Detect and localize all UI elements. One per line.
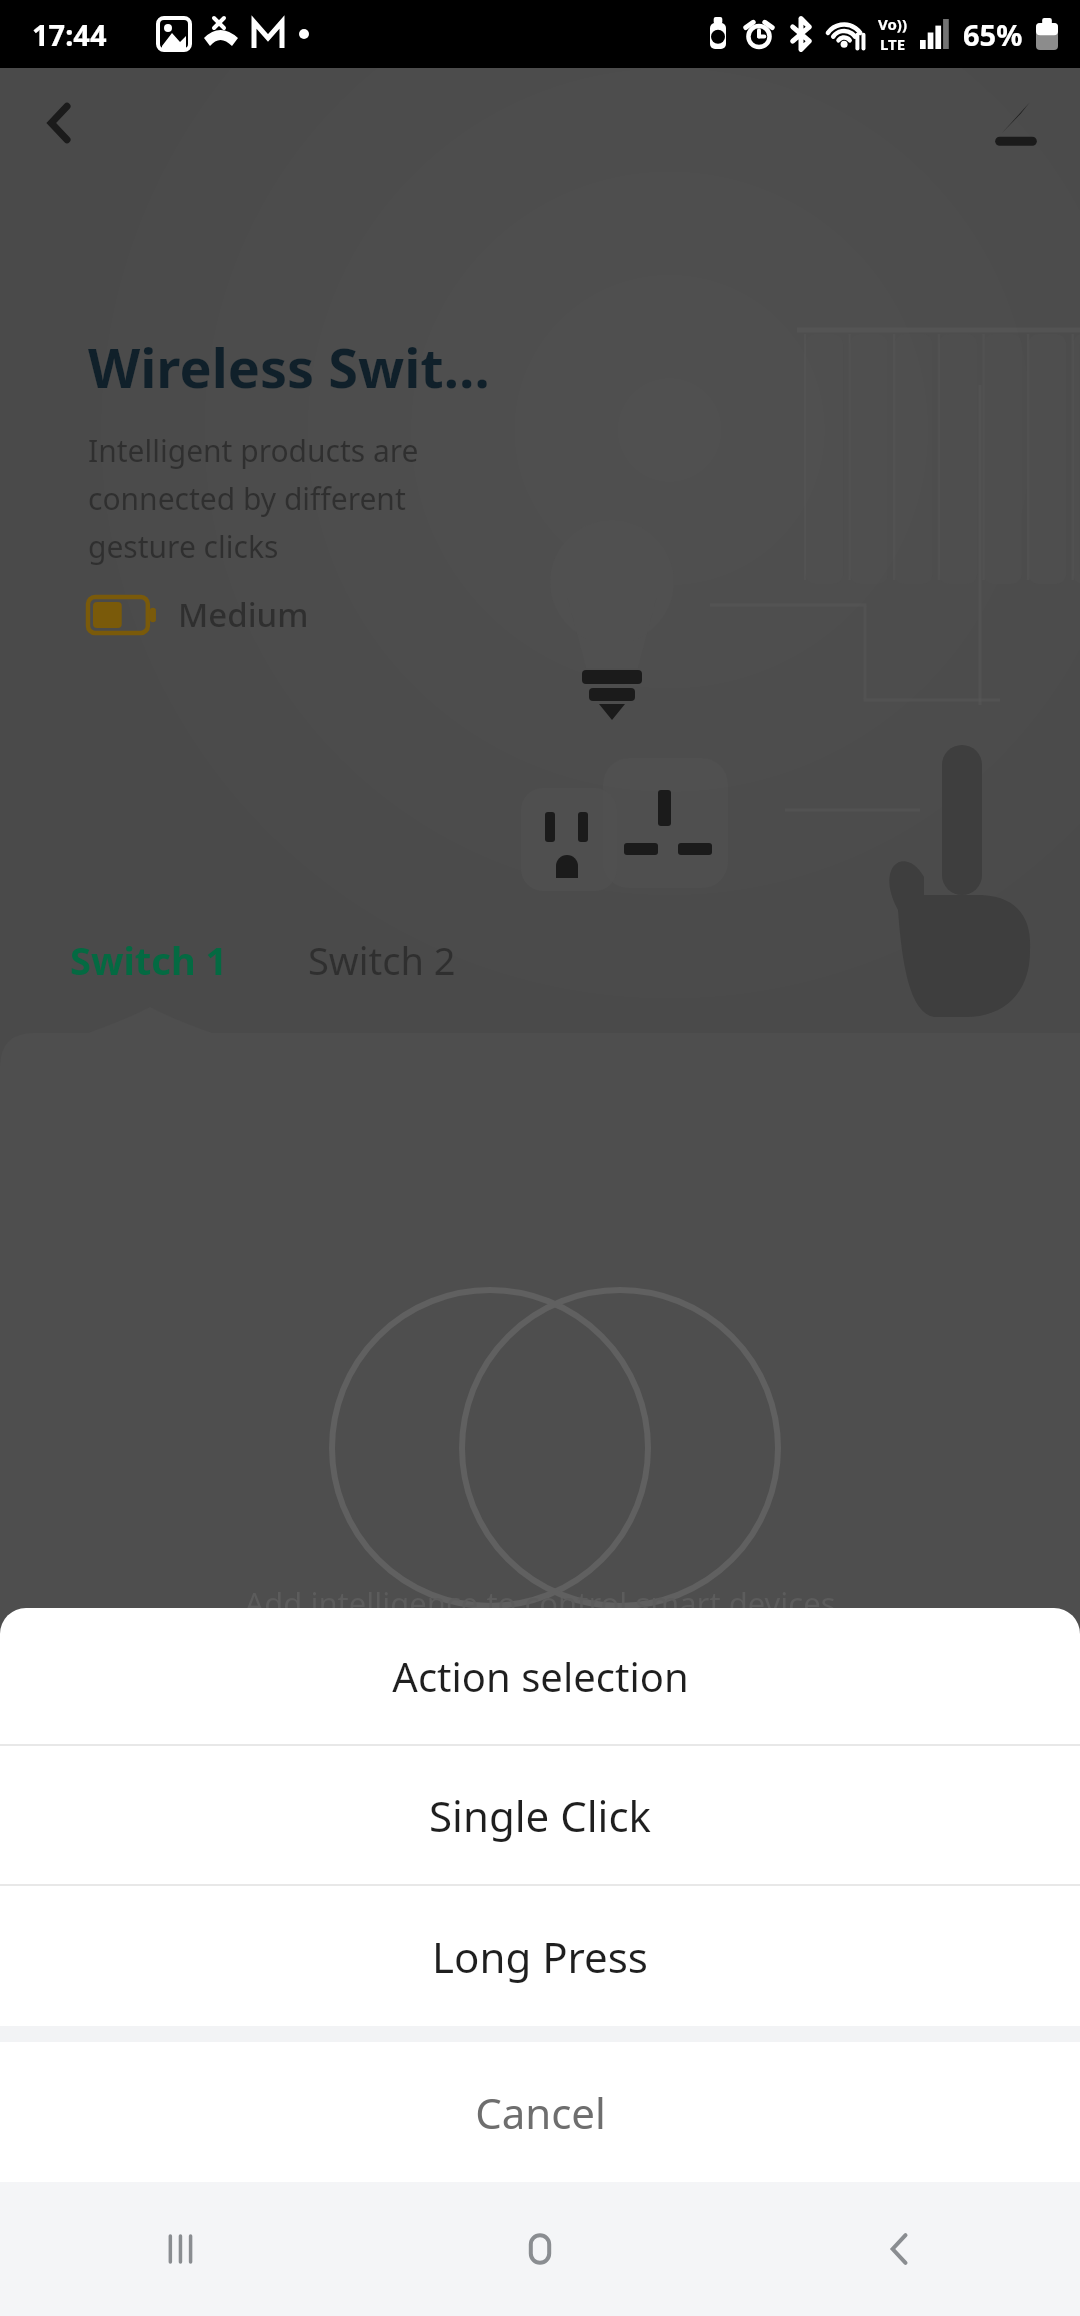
staticText: Vo)) [878,14,907,34]
button[interactable]: Switch 2 [298,920,466,1000]
staticText: Cancel [475,2084,606,2141]
button[interactable]: Back [720,2182,1080,2316]
staticText: LTE [880,34,906,54]
staticText: Switch 1 [70,934,228,986]
button[interactable]: Edit [974,81,1058,165]
button[interactable]: Switch 1 [60,920,238,1000]
button[interactable]: Back [18,81,102,165]
staticText: Wireless Swit… [88,330,490,404]
button[interactable]: Home [360,2182,720,2316]
staticText: 17:44 [32,15,107,54]
staticText: Switch 2 [308,934,456,986]
staticText: Long Press [432,1928,648,1985]
staticText: Intelligent products are connected by di… [88,430,419,566]
staticText: Action selection [392,1649,689,1703]
button[interactable]: Action selection [0,1608,1080,1744]
button[interactable]: Cancel [0,2042,1080,2182]
staticText: Add intelligence to control smart device… [244,1582,836,1624]
button[interactable]: Recent apps [0,2182,360,2316]
button[interactable]: Single Click [0,1746,1080,1884]
staticText: 65% [963,15,1023,54]
staticText: Medium [178,592,309,637]
button[interactable]: Long Press [0,1886,1080,2026]
staticText: Single Click [429,1787,651,1844]
